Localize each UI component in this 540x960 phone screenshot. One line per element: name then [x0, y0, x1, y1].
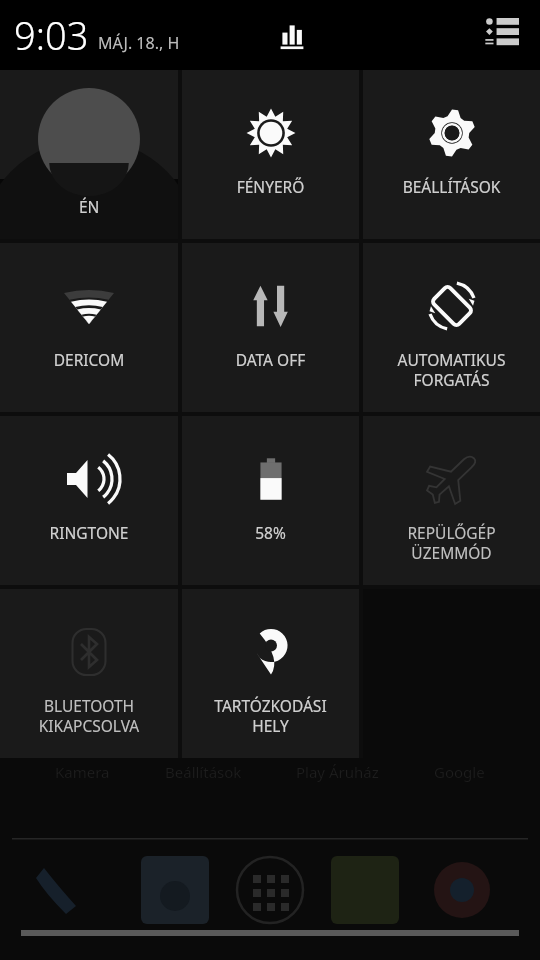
button[interactable]: BLUETOOTH KIKAPCSOLVA	[0, 589, 178, 758]
staticText: MÁJ. 18., H	[98, 32, 180, 54]
button[interactable]: 58%	[182, 416, 359, 585]
button[interactable]: Quick settings	[476, 9, 528, 61]
staticText: 58%	[186, 522, 355, 543]
staticText: ÉN	[79, 196, 100, 217]
button[interactable]: DATA OFF	[182, 243, 359, 412]
button[interactable]: Data usage	[270, 13, 314, 57]
button[interactable]: TARTÓZKODÁSI HELY	[182, 589, 359, 758]
button[interactable]: REPÜLŐGÉP ÜZEMMÓD	[363, 416, 540, 585]
button[interactable]: DERICOM	[0, 243, 178, 412]
staticText: AUTOMATIKUS FORGATÁS	[367, 349, 536, 390]
staticText: BLUETOOTH KIKAPCSOLVA	[4, 695, 174, 736]
button[interactable]: FÉNYERŐ	[182, 70, 359, 239]
staticText: REPÜLŐGÉP ÜZEMMÓD	[367, 522, 536, 563]
button[interactable]: ÉN	[0, 70, 178, 239]
staticText: TARTÓZKODÁSI HELY	[186, 695, 355, 736]
staticText: DATA OFF	[186, 349, 355, 370]
staticText: 9:03	[14, 9, 89, 61]
staticText: BEÁLLÍTÁSOK	[367, 176, 536, 197]
staticText: Kamera	[55, 762, 110, 782]
staticText: Google	[434, 762, 485, 782]
staticText: FÉNYERŐ	[186, 176, 355, 197]
button[interactable]: RINGTONE	[0, 416, 178, 585]
staticText: RINGTONE	[4, 522, 174, 543]
staticText: Beállítások	[165, 762, 242, 782]
staticText: DERICOM	[4, 349, 174, 370]
staticText: Play Áruház	[296, 762, 379, 782]
button[interactable]: AUTOMATIKUS FORGATÁS	[363, 243, 540, 412]
button[interactable]: BEÁLLÍTÁSOK	[363, 70, 540, 239]
